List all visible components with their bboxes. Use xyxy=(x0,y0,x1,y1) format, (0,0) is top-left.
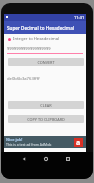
staticText: Nice job! xyxy=(6,137,23,142)
staticText: de0b6b3a763ffff xyxy=(7,76,40,82)
button[interactable]: CONVERT xyxy=(8,58,84,66)
staticText: a xyxy=(76,138,81,147)
staticText: Super Decimal to Hexadecimal xyxy=(7,25,74,31)
staticText: 11:31 xyxy=(74,15,85,20)
staticText: Integer to Hexadecimal xyxy=(13,36,60,42)
button[interactable]: Nice job! xyxy=(4,136,86,148)
button[interactable]: CLEAR xyxy=(8,101,84,109)
button[interactable]: COPY TO CLIPBOARD xyxy=(8,115,84,123)
staticText: CONVERT xyxy=(37,60,55,65)
button[interactable]: Back xyxy=(20,155,28,163)
staticText: This is a test ad from AdMob xyxy=(6,142,52,147)
staticText: 9999999999999999999 xyxy=(7,46,51,51)
staticText: COPY TO CLIPBOARD xyxy=(27,117,65,122)
button[interactable]: Recents xyxy=(64,155,72,163)
button[interactable]: Home xyxy=(42,155,50,163)
staticText: CLEAR xyxy=(40,103,52,108)
